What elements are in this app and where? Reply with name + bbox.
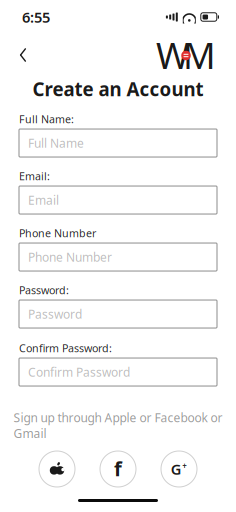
- button[interactable]: Phone Number: [19, 243, 217, 271]
- staticText: Sign up through Apple or Facebook or Gma…: [13, 410, 222, 441]
- staticText: +: [182, 461, 187, 471]
- staticText: Full Name: [28, 135, 84, 151]
- staticText: Full Name:: [19, 112, 74, 126]
- button[interactable]: Full Name: [19, 129, 217, 157]
- staticText: 6:55: [22, 7, 50, 27]
- staticText: Phone Number: [19, 226, 96, 240]
- button[interactable]: Sign up with Google: [161, 451, 197, 487]
- staticText: Password:: [19, 283, 69, 297]
- staticText: W: [156, 31, 189, 79]
- staticText: Confirm Password:: [19, 341, 112, 355]
- staticText: f: [114, 455, 122, 482]
- button[interactable]: Back: [10, 42, 36, 68]
- staticText: Password: [28, 306, 82, 322]
- button[interactable]: Email: [19, 186, 217, 214]
- staticText: G: [171, 459, 182, 479]
- staticText: M: [183, 31, 216, 79]
- button[interactable]: Confirm Password: [19, 358, 217, 386]
- staticText: Create an Account: [32, 77, 203, 101]
- staticText: Email:: [19, 169, 50, 183]
- staticText: Phone Number: [28, 249, 112, 265]
- staticText: Confirm Password: [28, 364, 130, 380]
- button[interactable]: Sign up with Apple: [39, 451, 75, 487]
- button[interactable]: Password: [19, 300, 217, 328]
- button[interactable]: Sign up with Facebook: [100, 451, 136, 487]
- staticText: Email: [28, 192, 59, 208]
